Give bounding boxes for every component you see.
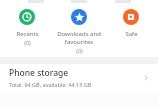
button[interactable]: Downloads and favourites: [54, 0, 104, 57]
staticText: Phone storage: [9, 67, 69, 79]
other: Open phone storage: [142, 74, 150, 82]
staticText: (0): [76, 47, 83, 54]
button[interactable]: Safe: [106, 0, 156, 57]
staticText: Recents: [16, 30, 39, 38]
button[interactable]: Recents: [2, 0, 52, 57]
staticText: (0): [24, 39, 31, 46]
button[interactable]: Phone storage: [0, 64, 158, 91]
staticText: Downloads and favourites: [57, 30, 101, 46]
staticText: Total: 64 GB, available: 44.13 GB: [9, 81, 92, 88]
staticText: Safe: [125, 30, 138, 38]
